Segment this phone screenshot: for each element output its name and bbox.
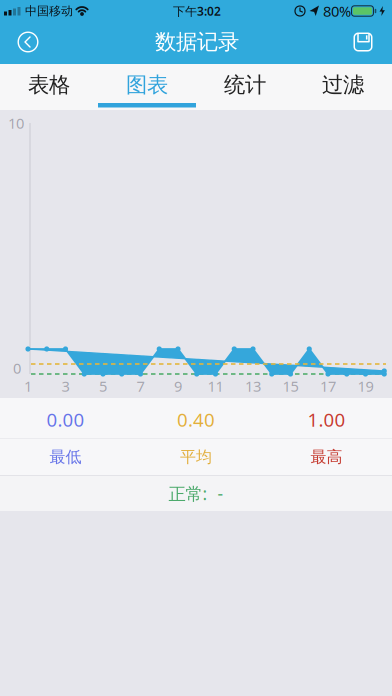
staticText: 13 [245,376,261,396]
staticText: 正常: - [168,482,223,505]
staticText: 0.00 [46,407,84,432]
staticText: 中国移动 [25,4,73,18]
staticText: 图表 [126,72,168,98]
staticText: 平均 [180,447,212,467]
staticText: 10 [8,113,24,133]
button[interactable]: 过滤 [294,64,392,110]
staticText: 1.00 [308,407,346,432]
staticText: 80% [323,1,351,21]
button[interactable] [10,24,46,60]
staticText: 3 [61,376,69,396]
button[interactable]: 图表 [98,64,196,110]
staticText: 15 [282,376,298,396]
button[interactable]: 表格 [0,64,98,110]
staticText: 17 [320,376,336,396]
staticText: 最高 [311,447,343,467]
staticText: 数据记录 [155,29,239,55]
staticText: 9 [174,376,182,396]
button[interactable] [346,25,380,59]
staticText: 0 [13,358,21,378]
staticText: 下午3:02 [173,3,221,19]
staticText: 表格 [28,72,70,98]
staticText: 19 [357,376,373,396]
staticText: 统计 [224,72,266,98]
staticText: 最低 [49,447,81,467]
staticText: 5 [99,376,107,396]
staticText: 7 [136,376,144,396]
staticText: 1 [24,376,32,396]
button[interactable]: 统计 [196,64,294,110]
staticText: 0.40 [177,407,215,432]
staticText: 11 [207,376,223,396]
staticText: 过滤 [322,72,364,98]
